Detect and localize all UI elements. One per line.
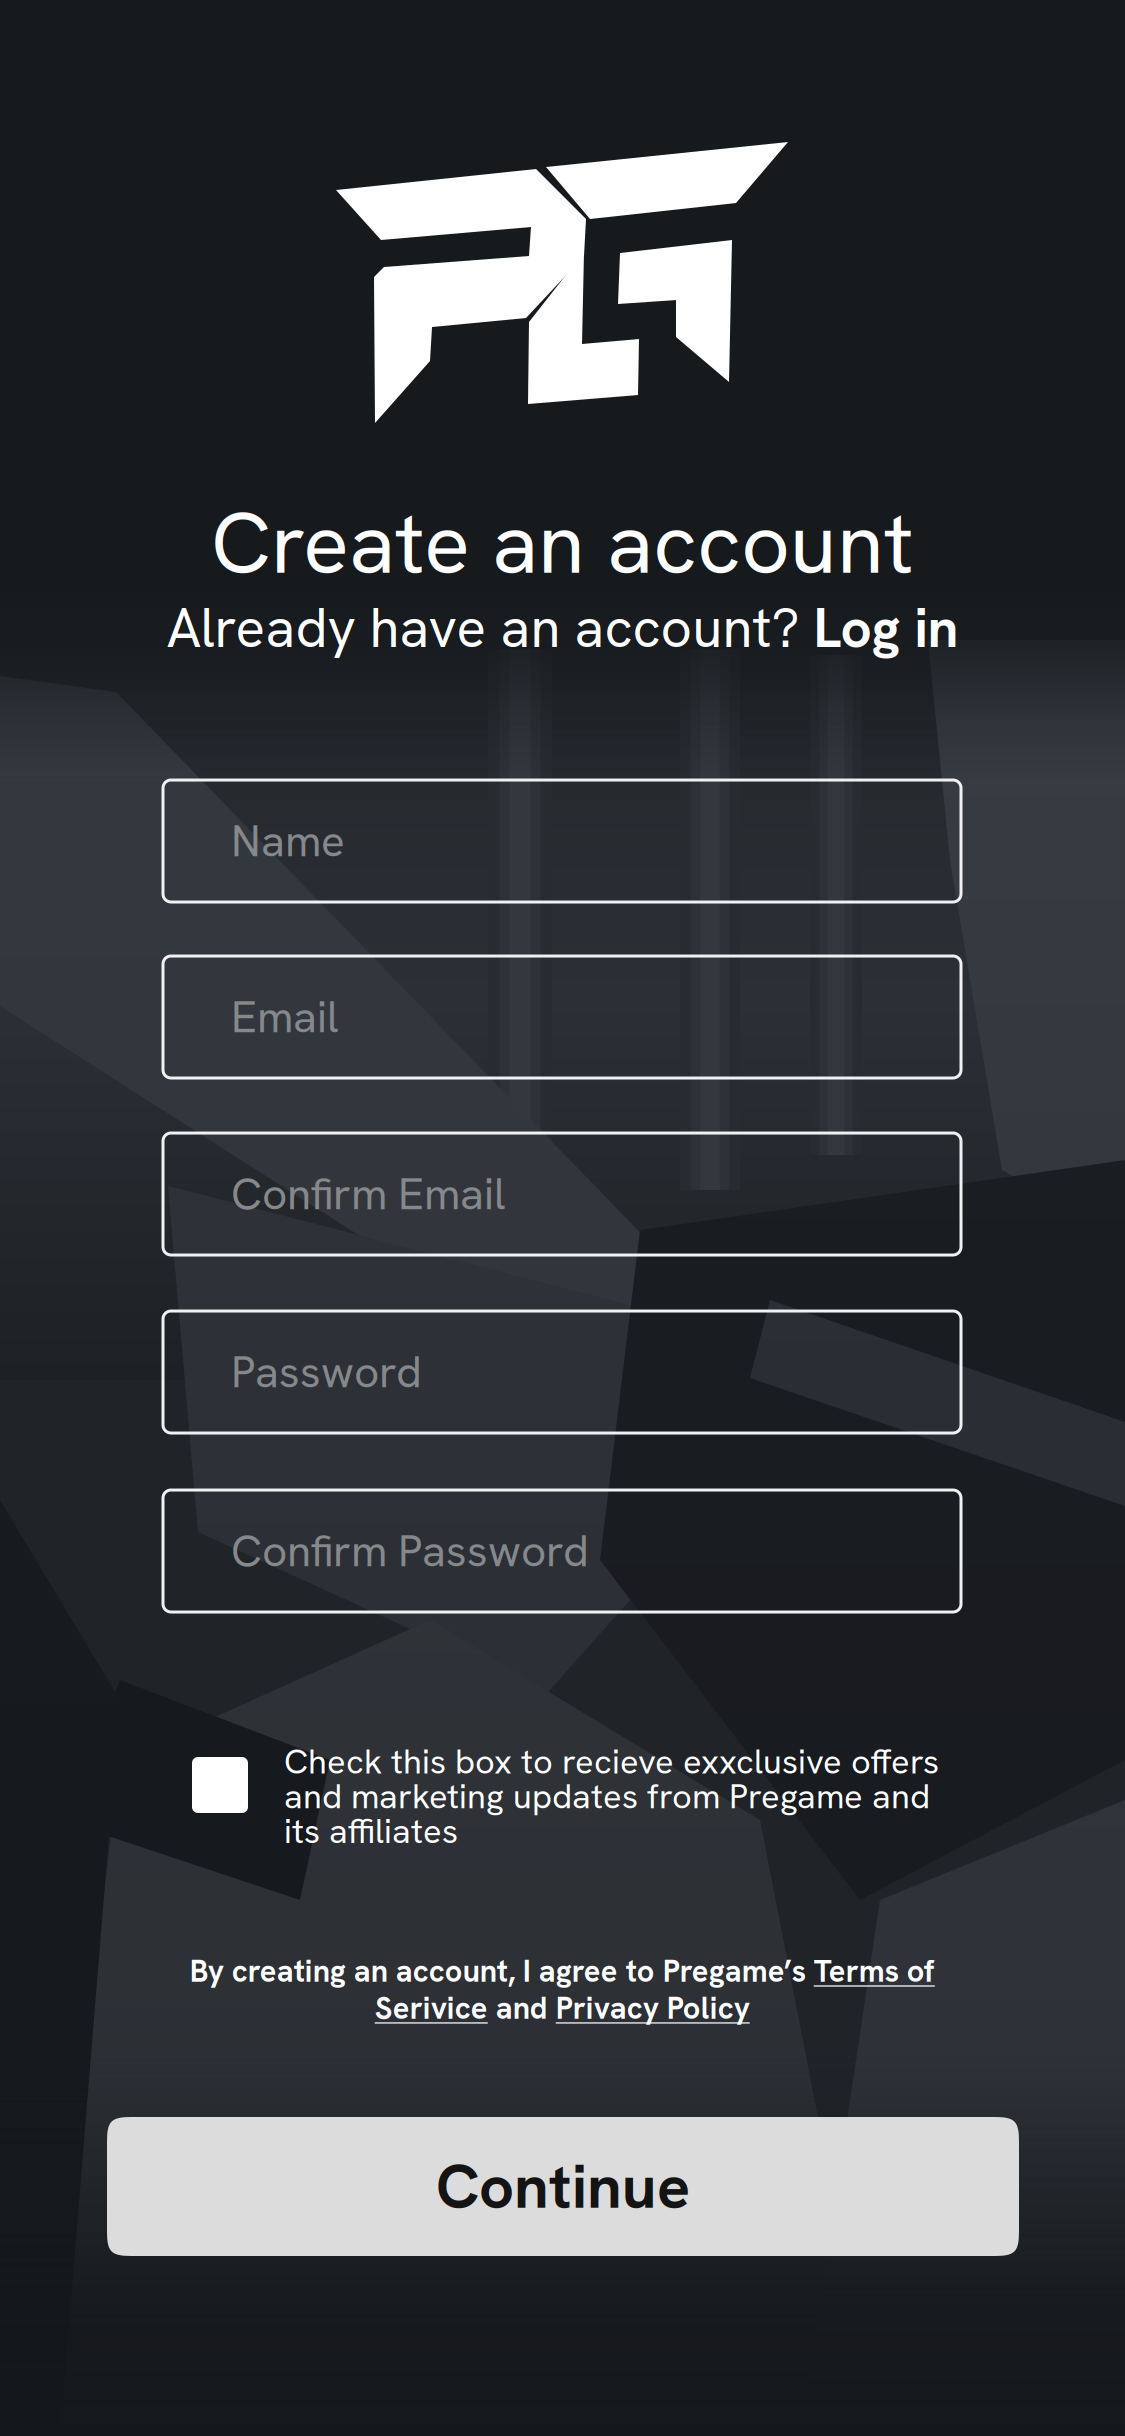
button[interactable]: Confirm Password — [163, 1490, 961, 1612]
staticText: Confirm Email — [231, 1165, 506, 1223]
button[interactable]: Continue — [107, 2117, 1019, 2256]
staticText: Log in — [813, 592, 958, 664]
button[interactable]: Name — [163, 780, 961, 902]
button[interactable]: Confirm Email — [163, 1133, 961, 1255]
button[interactable]: Check this box to recieve exxclusive off… — [192, 1739, 944, 1859]
staticText: Name — [231, 812, 345, 870]
button[interactable]: Log in — [813, 592, 958, 664]
staticText: Confirm Password — [231, 1522, 589, 1580]
staticText: Create an account — [211, 487, 914, 599]
staticText: Password — [231, 1343, 422, 1401]
staticText: Check this box to recieve exxclusive off… — [284, 1739, 939, 1853]
staticText: Already have an account? — [166, 592, 813, 664]
button[interactable]: Email — [163, 956, 961, 1078]
staticText: Email — [231, 988, 339, 1046]
staticText: Continue — [436, 2146, 690, 2226]
button[interactable]: Password — [163, 1311, 961, 1433]
staticText: By creating an account, I agree to Prega… — [189, 1951, 934, 2028]
